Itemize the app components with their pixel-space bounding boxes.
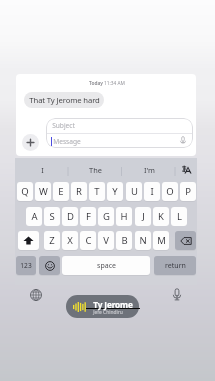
button[interactable]: S [44, 207, 60, 226]
staticText: V [103, 234, 109, 247]
button[interactable]: D [62, 207, 78, 226]
staticText: S [49, 210, 55, 223]
button[interactable]: The [71, 158, 119, 181]
staticText: M [157, 234, 166, 247]
staticText: A [31, 210, 38, 223]
button[interactable]: 123 [16, 256, 36, 275]
staticText: R [76, 185, 82, 198]
staticText: Q [21, 185, 29, 198]
button[interactable]: M [153, 231, 169, 250]
staticText: E [58, 185, 64, 198]
button[interactable]: Dictation [168, 286, 186, 304]
button[interactable]: K [153, 207, 169, 226]
button[interactable]: Y [107, 182, 123, 201]
button[interactable]: F [80, 207, 96, 226]
button[interactable]: R [71, 182, 87, 201]
staticText: P [185, 185, 191, 198]
button[interactable]: W [35, 182, 51, 201]
button[interactable]: H [116, 207, 132, 226]
button[interactable] [66, 295, 139, 318]
button[interactable]: I [144, 182, 160, 201]
button[interactable]: V [98, 231, 114, 250]
staticText: 123 [20, 261, 32, 270]
button[interactable]: Add attachment [22, 134, 39, 151]
staticText: K [158, 210, 164, 223]
button[interactable]: C [80, 231, 96, 250]
staticText: N [139, 234, 147, 247]
staticText: J [142, 210, 145, 223]
button[interactable]: return [154, 256, 196, 275]
staticText: D [67, 210, 74, 223]
staticText: I'm [144, 165, 155, 175]
button[interactable]: That Ty Jerome hard [24, 92, 104, 108]
button[interactable]: G [98, 207, 114, 226]
button[interactable]: Change keyboard [28, 287, 44, 303]
button[interactable]: U [126, 182, 142, 201]
staticText: space [97, 261, 116, 271]
staticText: U [131, 185, 138, 198]
button[interactable]: Shift [18, 231, 39, 250]
button[interactable]: X [62, 231, 78, 250]
staticText: Z [49, 234, 55, 247]
button[interactable]: T [89, 182, 105, 201]
staticText: W [39, 185, 48, 198]
staticText: B [121, 234, 128, 247]
button[interactable]: A [26, 207, 42, 226]
button[interactable]: J [135, 207, 151, 226]
staticText: T [94, 185, 100, 198]
staticText: Today [88, 80, 104, 87]
staticText: That Ty Jerome hard [29, 95, 100, 105]
staticText: L [177, 210, 182, 223]
button[interactable]: Dictate [179, 136, 187, 144]
staticText: I [41, 165, 44, 175]
staticText: The [89, 165, 102, 175]
button[interactable]: O [162, 182, 178, 201]
staticText: I [150, 185, 154, 198]
button[interactable]: L [171, 207, 187, 226]
button[interactable]: E [53, 182, 69, 201]
button[interactable]: Z [44, 231, 60, 250]
staticText: 11:34 AM [104, 80, 125, 87]
button[interactable]: I'm [125, 158, 173, 181]
staticText: Message [53, 137, 81, 146]
button[interactable]: B [116, 231, 132, 250]
staticText: F [86, 210, 91, 223]
staticText: Ty Jerome [93, 299, 133, 310]
staticText: X [67, 234, 73, 247]
staticText: C [85, 234, 92, 247]
staticText: Y [112, 185, 118, 198]
staticText: Subject [52, 121, 75, 130]
button[interactable]: P [180, 182, 196, 201]
staticText: O [166, 185, 174, 198]
staticText: H [120, 210, 128, 223]
staticText: Jefe Chindiru [93, 309, 123, 316]
button[interactable]: I [18, 158, 66, 181]
staticText: return [165, 261, 186, 271]
button[interactable]: Backspace [175, 231, 196, 250]
button[interactable]: Q [17, 182, 33, 201]
staticText: G [103, 210, 110, 223]
button[interactable]: Emoji [39, 256, 60, 275]
button[interactable]: space [62, 256, 150, 275]
button[interactable]: N [135, 231, 151, 250]
button[interactable]: Text formatting [176, 158, 198, 181]
